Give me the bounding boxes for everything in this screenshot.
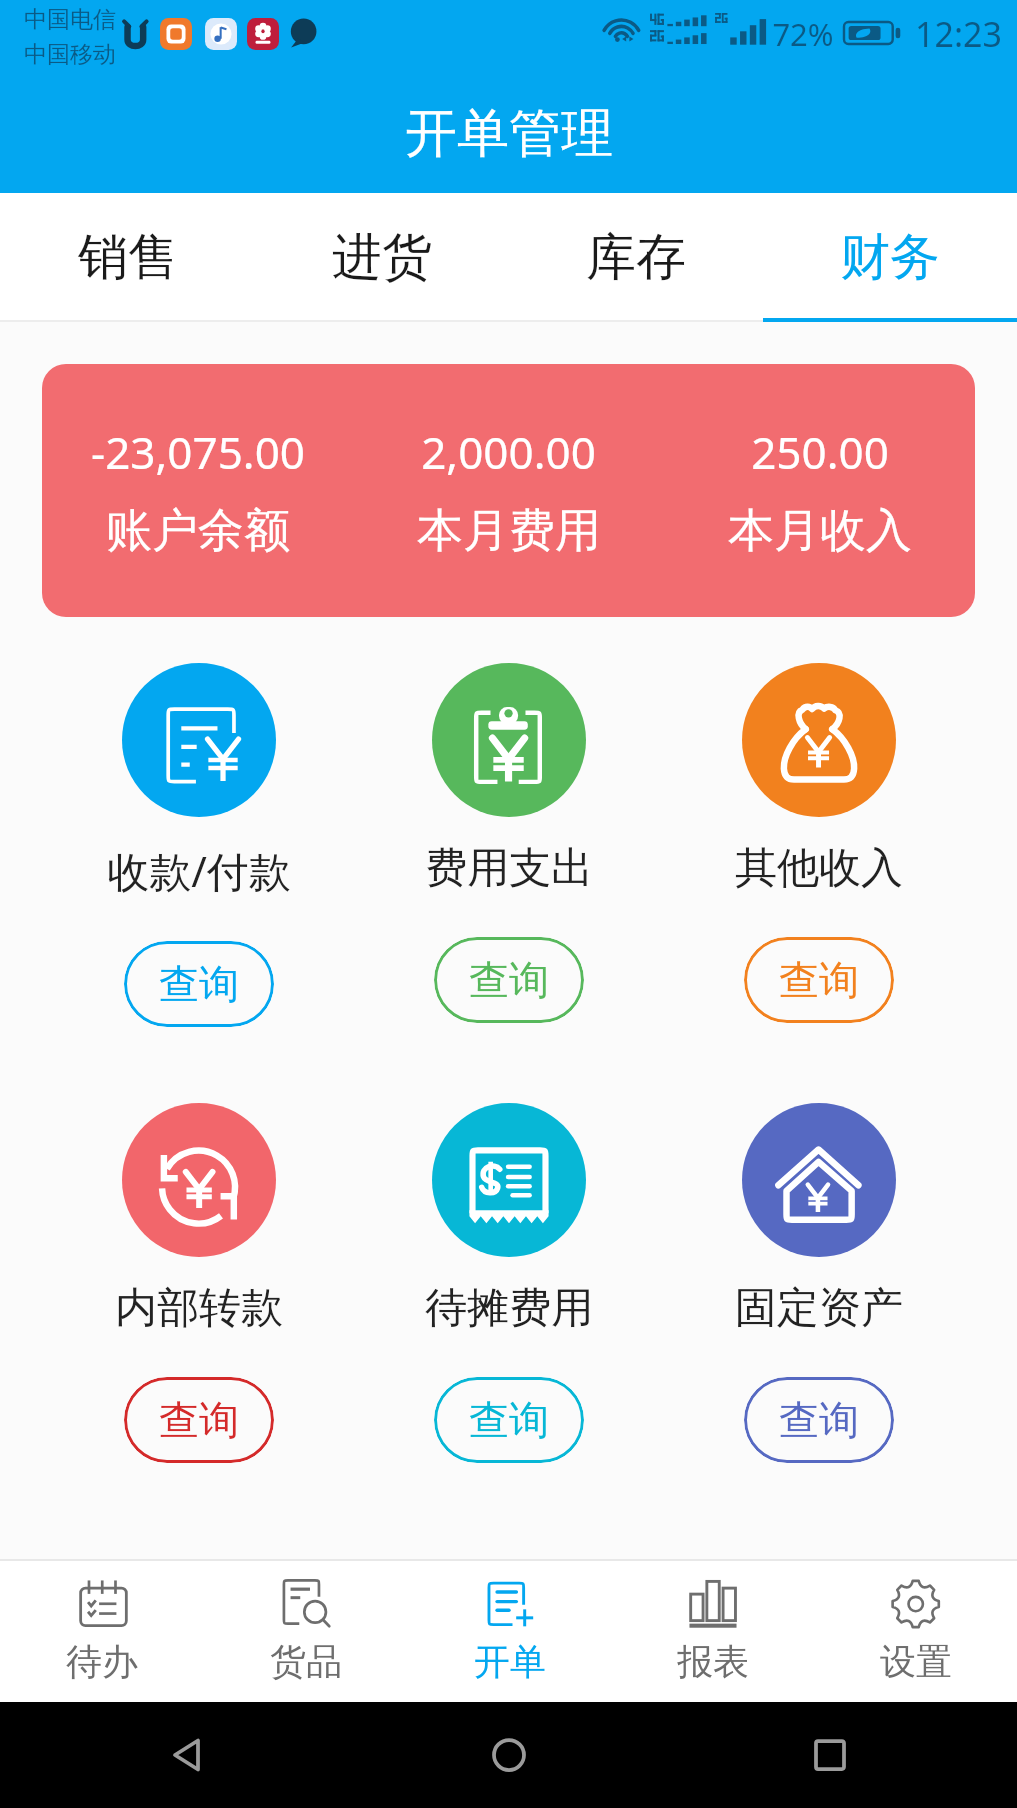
button[interactable]: 待摊费用 [432, 1103, 586, 1257]
staticText: 货品 [270, 1639, 342, 1684]
button[interactable]: 进货 [255, 193, 509, 322]
staticText: 开单管理 [405, 101, 613, 167]
button[interactable]: Recents [793, 1718, 867, 1792]
staticText: 开单 [474, 1639, 546, 1684]
button[interactable]: 查询 [744, 1377, 894, 1463]
staticText: 查询 [779, 955, 859, 1005]
staticText: 查询 [159, 1395, 239, 1445]
button[interactable]: 内部转款 [122, 1103, 276, 1257]
staticText: 中国电信 [24, 5, 116, 34]
button[interactable]: 销售 [0, 193, 255, 322]
button[interactable]: 库存 [509, 193, 763, 322]
staticText: 固定资产 [735, 1282, 903, 1335]
button[interactable]: 查询 [124, 1377, 274, 1463]
button[interactable]: 固定资产 [742, 1103, 896, 1257]
button[interactable]: 费用支出 [432, 663, 586, 817]
staticText: 进货 [332, 226, 432, 289]
button[interactable]: -23,075.00 [42, 364, 975, 617]
button[interactable]: 查询 [434, 1377, 584, 1463]
button[interactable]: Back [150, 1718, 224, 1792]
staticText: -23,075.00 [91, 422, 305, 482]
button[interactable]: 货品 [204, 1561, 408, 1702]
button[interactable]: 查询 [124, 941, 274, 1027]
staticText: 12:23 [915, 11, 1002, 57]
staticText: 本月收入 [728, 502, 912, 560]
staticText: 报表 [677, 1639, 749, 1684]
staticText: 内部转款 [115, 1282, 283, 1335]
staticText: 费用支出 [425, 842, 593, 895]
staticText: 查询 [469, 1395, 549, 1445]
button[interactable]: 收款/付款 [122, 663, 276, 817]
button[interactable]: 开单 [408, 1561, 611, 1702]
staticText: 设置 [880, 1639, 952, 1684]
button[interactable]: 查询 [434, 937, 584, 1023]
button[interactable]: 财务 [763, 193, 1017, 322]
staticText: 查询 [159, 959, 239, 1009]
staticText: 待摊费用 [425, 1282, 593, 1335]
staticText: 2,000.00 [421, 422, 596, 482]
staticText: 查询 [469, 955, 549, 1005]
button[interactable]: 查询 [744, 937, 894, 1023]
staticText: 72% [772, 13, 834, 55]
button[interactable]: 设置 [814, 1561, 1017, 1702]
staticText: 库存 [586, 226, 686, 289]
button[interactable]: 待办 [0, 1561, 204, 1702]
staticText: 查询 [779, 1395, 859, 1445]
button[interactable]: 其他收入 [742, 663, 896, 817]
staticText: 收款/付款 [107, 842, 291, 899]
staticText: 待办 [66, 1639, 138, 1684]
button[interactable]: Home [472, 1718, 546, 1792]
button[interactable]: 报表 [611, 1561, 814, 1702]
staticText: 中国移动 [24, 40, 116, 69]
staticText: 其他收入 [735, 842, 903, 895]
staticText: 财务 [840, 226, 940, 289]
staticText: 销售 [78, 226, 178, 289]
staticText: 250.00 [751, 422, 889, 482]
staticText: 账户余额 [106, 502, 290, 560]
staticText: 本月费用 [417, 502, 601, 560]
